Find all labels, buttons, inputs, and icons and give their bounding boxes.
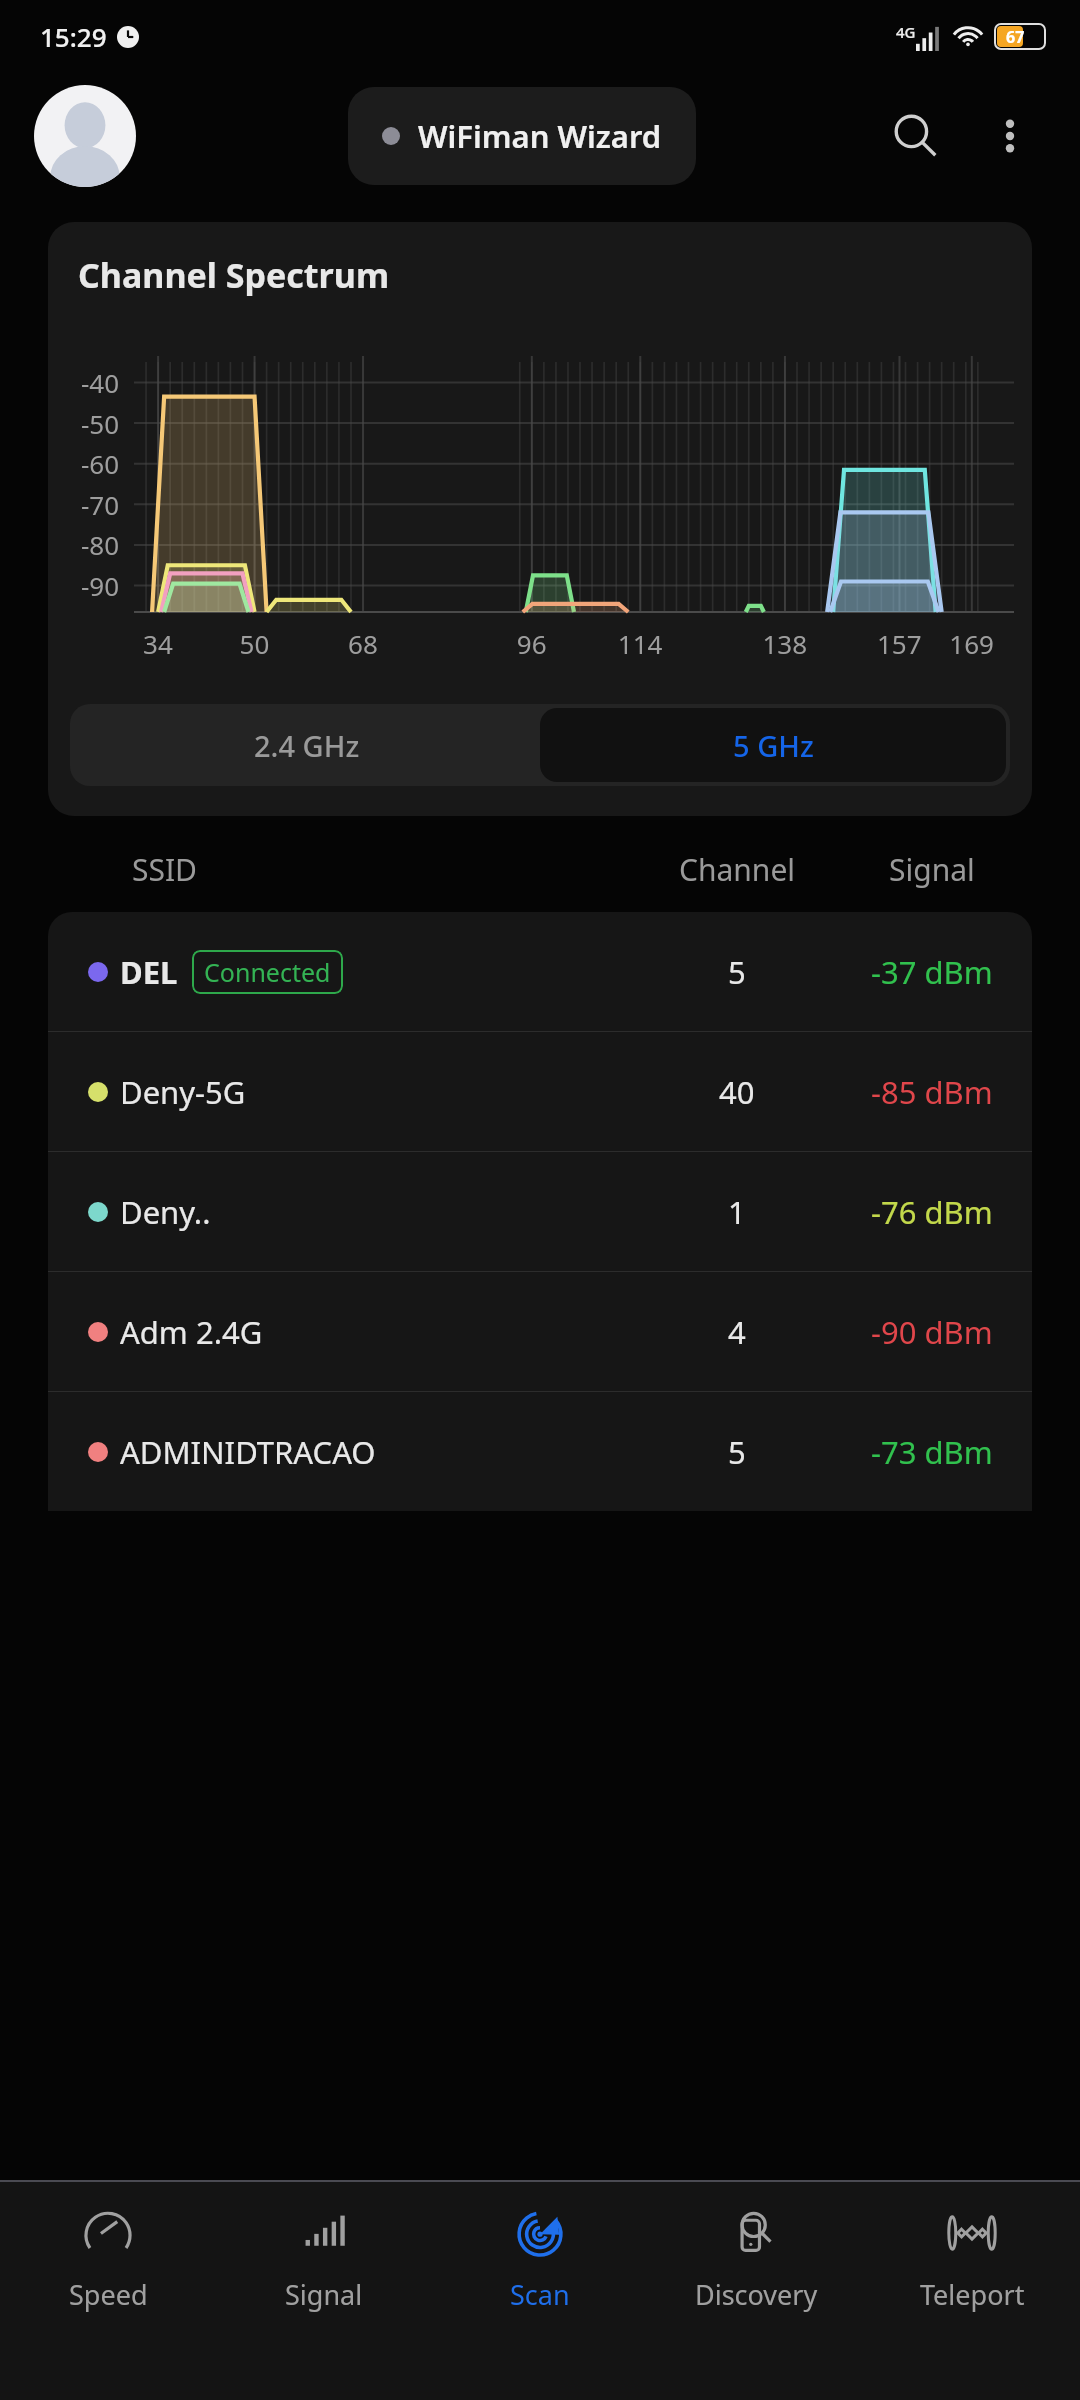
- staticText: Speed: [69, 2276, 148, 2313]
- staticText: 40: [719, 1071, 755, 1113]
- staticText: Channel Spectrum: [78, 252, 390, 298]
- staticText: 1: [728, 1191, 746, 1233]
- button[interactable]: 5 GHz: [540, 708, 1006, 782]
- staticText: Deny..: [120, 1191, 211, 1233]
- staticText: 2.4 GHz: [254, 726, 360, 765]
- staticText: Discovery: [695, 2276, 818, 2313]
- staticText: 5: [728, 1431, 746, 1473]
- staticText: -76 dBm: [871, 1191, 993, 1233]
- button[interactable]: Speed: [0, 2182, 216, 2400]
- staticText: SSID: [132, 849, 198, 890]
- staticText: -90 dBm: [871, 1311, 993, 1353]
- button[interactable]: Search: [878, 98, 954, 174]
- staticText: ADMINIDTRACAO: [120, 1431, 376, 1473]
- staticText: Channel: [679, 849, 796, 890]
- staticText: 4: [728, 1311, 746, 1353]
- button[interactable]: Deny-5G: [48, 1032, 1032, 1151]
- staticText: 5: [728, 951, 746, 993]
- button[interactable]: Signal: [216, 2182, 432, 2400]
- staticText: 5 GHz: [733, 726, 814, 765]
- staticText: -85 dBm: [871, 1071, 993, 1113]
- staticText: Scan: [510, 2276, 570, 2313]
- staticText: 15:29: [40, 19, 107, 54]
- staticText: DEL: [120, 951, 178, 993]
- staticText: -37 dBm: [871, 951, 993, 993]
- staticText: 67: [1006, 26, 1025, 48]
- button[interactable]: Teleport: [864, 2182, 1080, 2400]
- staticText: Connected: [204, 955, 331, 989]
- button[interactable]: Adm 2.4G: [48, 1272, 1032, 1391]
- staticText: WiFiman Wizard: [418, 115, 662, 157]
- staticText: -73 dBm: [871, 1431, 993, 1473]
- staticText: Deny-5G: [120, 1071, 246, 1113]
- button[interactable]: ADMINIDTRACAO: [48, 1392, 1032, 1511]
- staticText: Signal: [889, 849, 975, 890]
- staticText: Adm 2.4G: [120, 1311, 263, 1353]
- button[interactable]: Deny..: [48, 1152, 1032, 1271]
- button[interactable]: Discovery: [648, 2182, 864, 2400]
- staticText: Signal: [285, 2276, 363, 2313]
- button[interactable]: WiFiman Wizard: [348, 87, 696, 185]
- button[interactable]: DEL: [48, 912, 1032, 1031]
- staticText: Teleport: [920, 2276, 1025, 2313]
- button[interactable]: More options: [974, 100, 1046, 172]
- staticText: 4G: [896, 22, 916, 42]
- button[interactable]: 2.4 GHz: [74, 708, 540, 782]
- button[interactable]: Scan: [432, 2182, 648, 2400]
- button[interactable]: Account: [34, 85, 136, 187]
